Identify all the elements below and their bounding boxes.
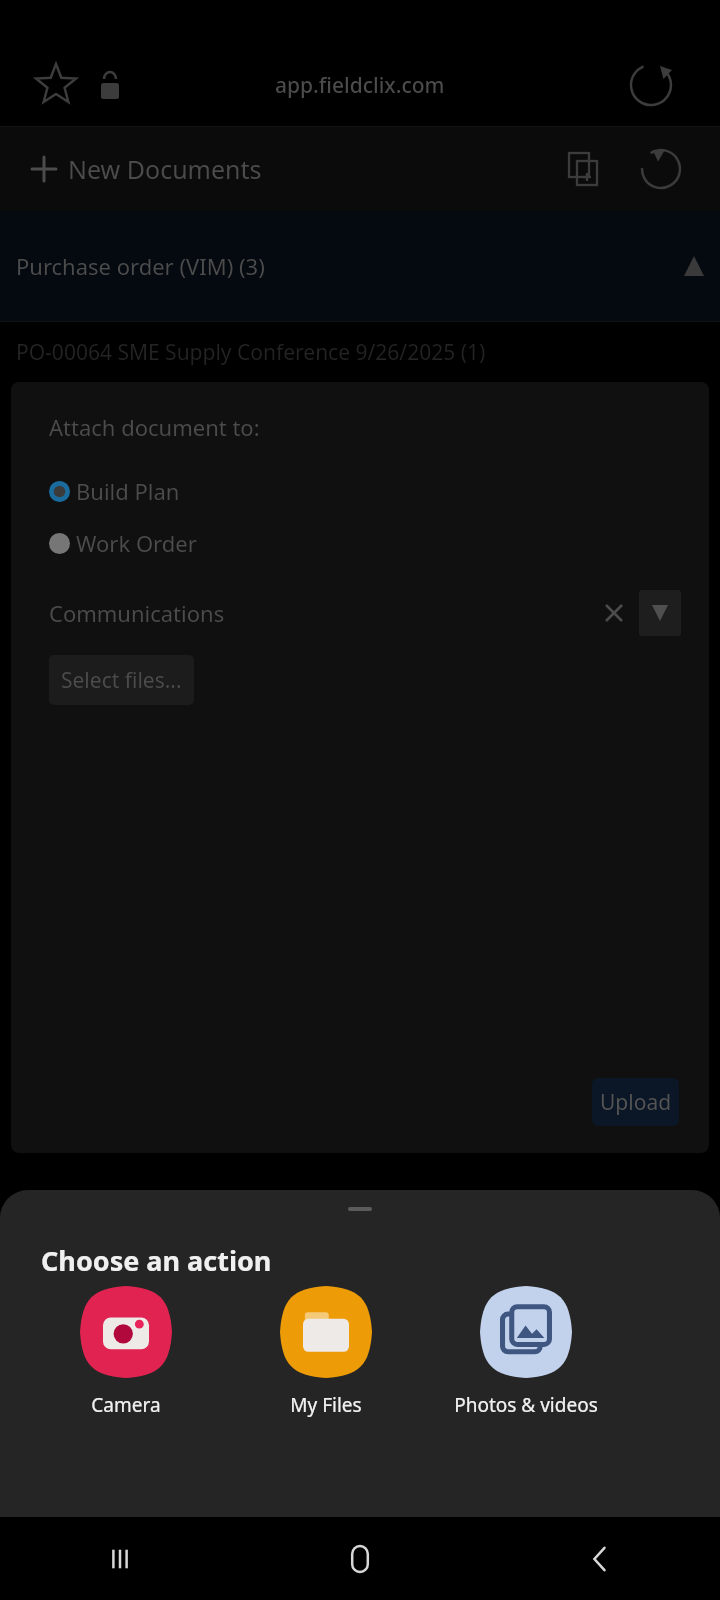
button[interactable]: Back [480,1517,720,1600]
staticText: Attach document to: [49,412,260,442]
button[interactable]: Photos & videos [426,1286,626,1418]
staticText: Photos & videos [454,1392,598,1418]
staticText: PO-00064 SME Supply Conference 9/26/2025… [16,338,486,367]
button[interactable]: My Files [226,1286,426,1418]
staticText: My Files [290,1392,362,1418]
staticText: Select files... [61,666,182,695]
button[interactable]: Select files... [49,655,194,705]
other: Clear [601,600,627,626]
staticText: Upload [600,1088,672,1117]
staticText: Purchase order (VIM) (3) [16,251,265,281]
button[interactable]: Home [240,1517,480,1600]
button[interactable]: Build Plan [49,471,709,511]
button[interactable]: Work Order [49,523,709,563]
button[interactable]: Camera [26,1286,226,1418]
button[interactable]: Upload [592,1078,679,1126]
button[interactable]: Communications [49,585,681,641]
staticText: Work Order [76,528,197,558]
staticText: app.fieldclix.com [275,71,445,100]
button[interactable]: Recents [0,1517,240,1600]
staticText: Camera [91,1392,161,1418]
staticText: Choose an action [41,1242,272,1279]
staticText: New Documents [68,152,262,186]
staticText: Communications [49,598,225,628]
other: Open dropdown [639,590,681,636]
staticText: Build Plan [76,476,180,506]
